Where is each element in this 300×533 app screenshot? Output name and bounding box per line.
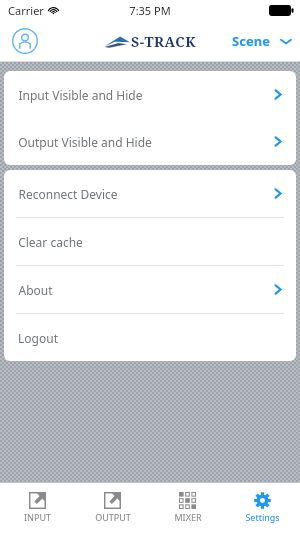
staticText: OUTPUT — [95, 511, 131, 523]
staticText: Carrier — [8, 3, 44, 18]
staticText: INPUT — [24, 511, 51, 523]
staticText: MIXER — [174, 511, 202, 523]
staticText: Input Visible and Hide — [18, 87, 143, 103]
staticText: About — [18, 282, 53, 298]
staticText: S-TRACK — [131, 32, 196, 51]
button[interactable]: Output Visible and Hide — [4, 118, 296, 165]
staticText: 7:35 PM — [129, 3, 171, 18]
staticText: Logout — [18, 330, 58, 346]
staticText: Reconnect Device — [18, 186, 118, 202]
button[interactable]: About — [4, 266, 296, 313]
button[interactable]: Input Visible and Hide — [4, 71, 296, 118]
button[interactable]: Settings — [225, 490, 300, 523]
button[interactable]: Profile — [12, 28, 38, 54]
button[interactable]: MIXER — [150, 490, 225, 523]
button[interactable]: INPUT — [0, 490, 75, 523]
button[interactable]: Logout — [4, 314, 296, 361]
button[interactable]: Scene — [232, 32, 292, 50]
button[interactable]: Reconnect Device — [4, 170, 296, 217]
staticText: Output Visible and Hide — [18, 134, 152, 150]
staticText: Clear cache — [18, 234, 83, 250]
staticText: Scene — [232, 32, 270, 50]
button[interactable]: OUTPUT — [75, 490, 150, 523]
button[interactable]: Clear cache — [4, 218, 296, 265]
staticText: Settings — [245, 511, 280, 523]
